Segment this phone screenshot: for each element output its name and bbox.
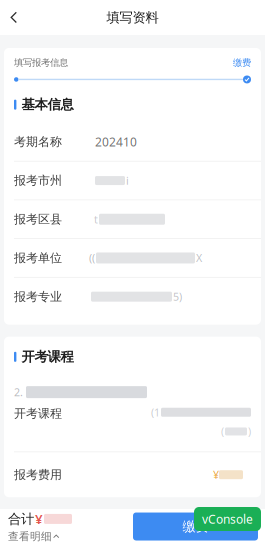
staticText: 5) (173, 290, 182, 304)
staticText: 报考区县 (14, 212, 62, 227)
staticText: 填写资料 (106, 9, 158, 26)
staticText: (1 (151, 405, 160, 419)
staticText: t (94, 212, 98, 226)
staticText: 缴费 (182, 518, 208, 535)
staticText: 报考专业 (14, 289, 62, 304)
staticText: 填写报考信息 (14, 57, 68, 68)
staticText: 基本信息 (21, 96, 73, 113)
staticText: ¥ (213, 468, 219, 482)
staticText: 查看明细 (8, 530, 52, 543)
staticText: (( (89, 251, 95, 265)
staticText: 考期名称 (14, 134, 62, 149)
button[interactable]: vConsole (194, 507, 261, 531)
staticText: 报考单位 (14, 251, 62, 265)
button[interactable]: 查看明细 (8, 530, 59, 543)
staticText: ) (248, 424, 251, 438)
button[interactable]: Back (0, 0, 27, 35)
staticText: i (126, 173, 129, 188)
staticText: 开考课程 (14, 406, 62, 421)
staticText: 缴费 (233, 57, 251, 68)
button[interactable]: 缴费 (133, 512, 258, 540)
staticText: X (196, 251, 202, 265)
staticText: 2. (14, 385, 23, 399)
staticText: 开考课程 (21, 349, 73, 365)
staticText: ¥ (35, 510, 43, 528)
staticText: 报考费用 (14, 467, 62, 482)
staticText: ( (221, 424, 224, 438)
staticText: vConsole (202, 511, 253, 527)
staticText: 合计 (8, 511, 34, 527)
staticText: 202410 (95, 134, 137, 150)
staticText: 报考市州 (14, 173, 62, 188)
